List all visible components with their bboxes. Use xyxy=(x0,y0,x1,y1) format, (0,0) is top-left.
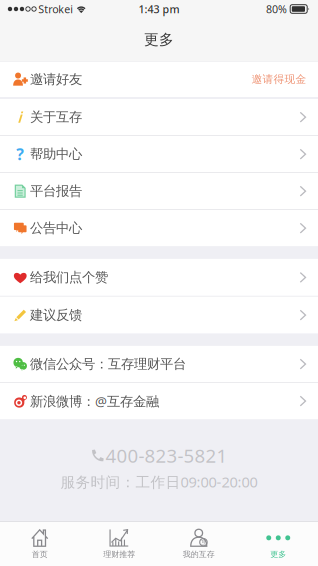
staticText: 邀请好友 xyxy=(30,71,82,87)
staticText: 帮助中心 xyxy=(30,146,82,162)
staticText: 公告中心 xyxy=(30,220,82,236)
staticText: 更多 xyxy=(270,549,286,559)
staticText: 我的互存 xyxy=(183,549,215,559)
button[interactable]: 理财推荐 xyxy=(79,522,159,566)
button[interactable]: 公告中心 xyxy=(0,210,318,246)
button[interactable]: 邀请好友 xyxy=(0,61,318,97)
staticText: 更多 xyxy=(144,30,174,48)
button[interactable]: 平台报告 xyxy=(0,173,318,209)
staticText: 理财推荐 xyxy=(103,549,135,559)
staticText: 400-823-5821 xyxy=(105,443,227,468)
staticText: 新浪微博：@互存金融 xyxy=(30,392,159,410)
staticText: 平台报告 xyxy=(30,183,82,199)
staticText: Strokei xyxy=(38,2,73,16)
button[interactable]: 关于互存 xyxy=(0,99,318,135)
staticText: 邀请得现金 xyxy=(251,73,306,86)
button[interactable]: 互 xyxy=(159,522,238,566)
staticText: 建议反馈 xyxy=(30,307,82,323)
button[interactable]: 建议反馈 xyxy=(0,297,318,334)
button[interactable]: 更多 xyxy=(238,522,318,566)
staticText: 给我们点个赞 xyxy=(30,269,108,286)
staticText: 服务时间：工作日09:00-20:00 xyxy=(60,472,257,491)
button[interactable]: ? xyxy=(0,136,318,172)
button[interactable]: 微信公众号：互存理财平台 xyxy=(0,346,318,382)
button[interactable]: 给我们点个赞 xyxy=(0,259,318,296)
staticText: 80% xyxy=(266,2,287,16)
button[interactable]: 首页 xyxy=(0,522,79,566)
staticText: ? xyxy=(16,143,24,165)
staticText: 首页 xyxy=(32,549,48,559)
staticText: 互 xyxy=(201,539,206,546)
staticText: 关于互存 xyxy=(30,109,82,125)
button[interactable]: 新浪微博：@互存金融 xyxy=(0,383,318,419)
staticText: 1:43 pm xyxy=(138,2,179,16)
staticText: 微信公众号：互存理财平台 xyxy=(30,356,186,372)
